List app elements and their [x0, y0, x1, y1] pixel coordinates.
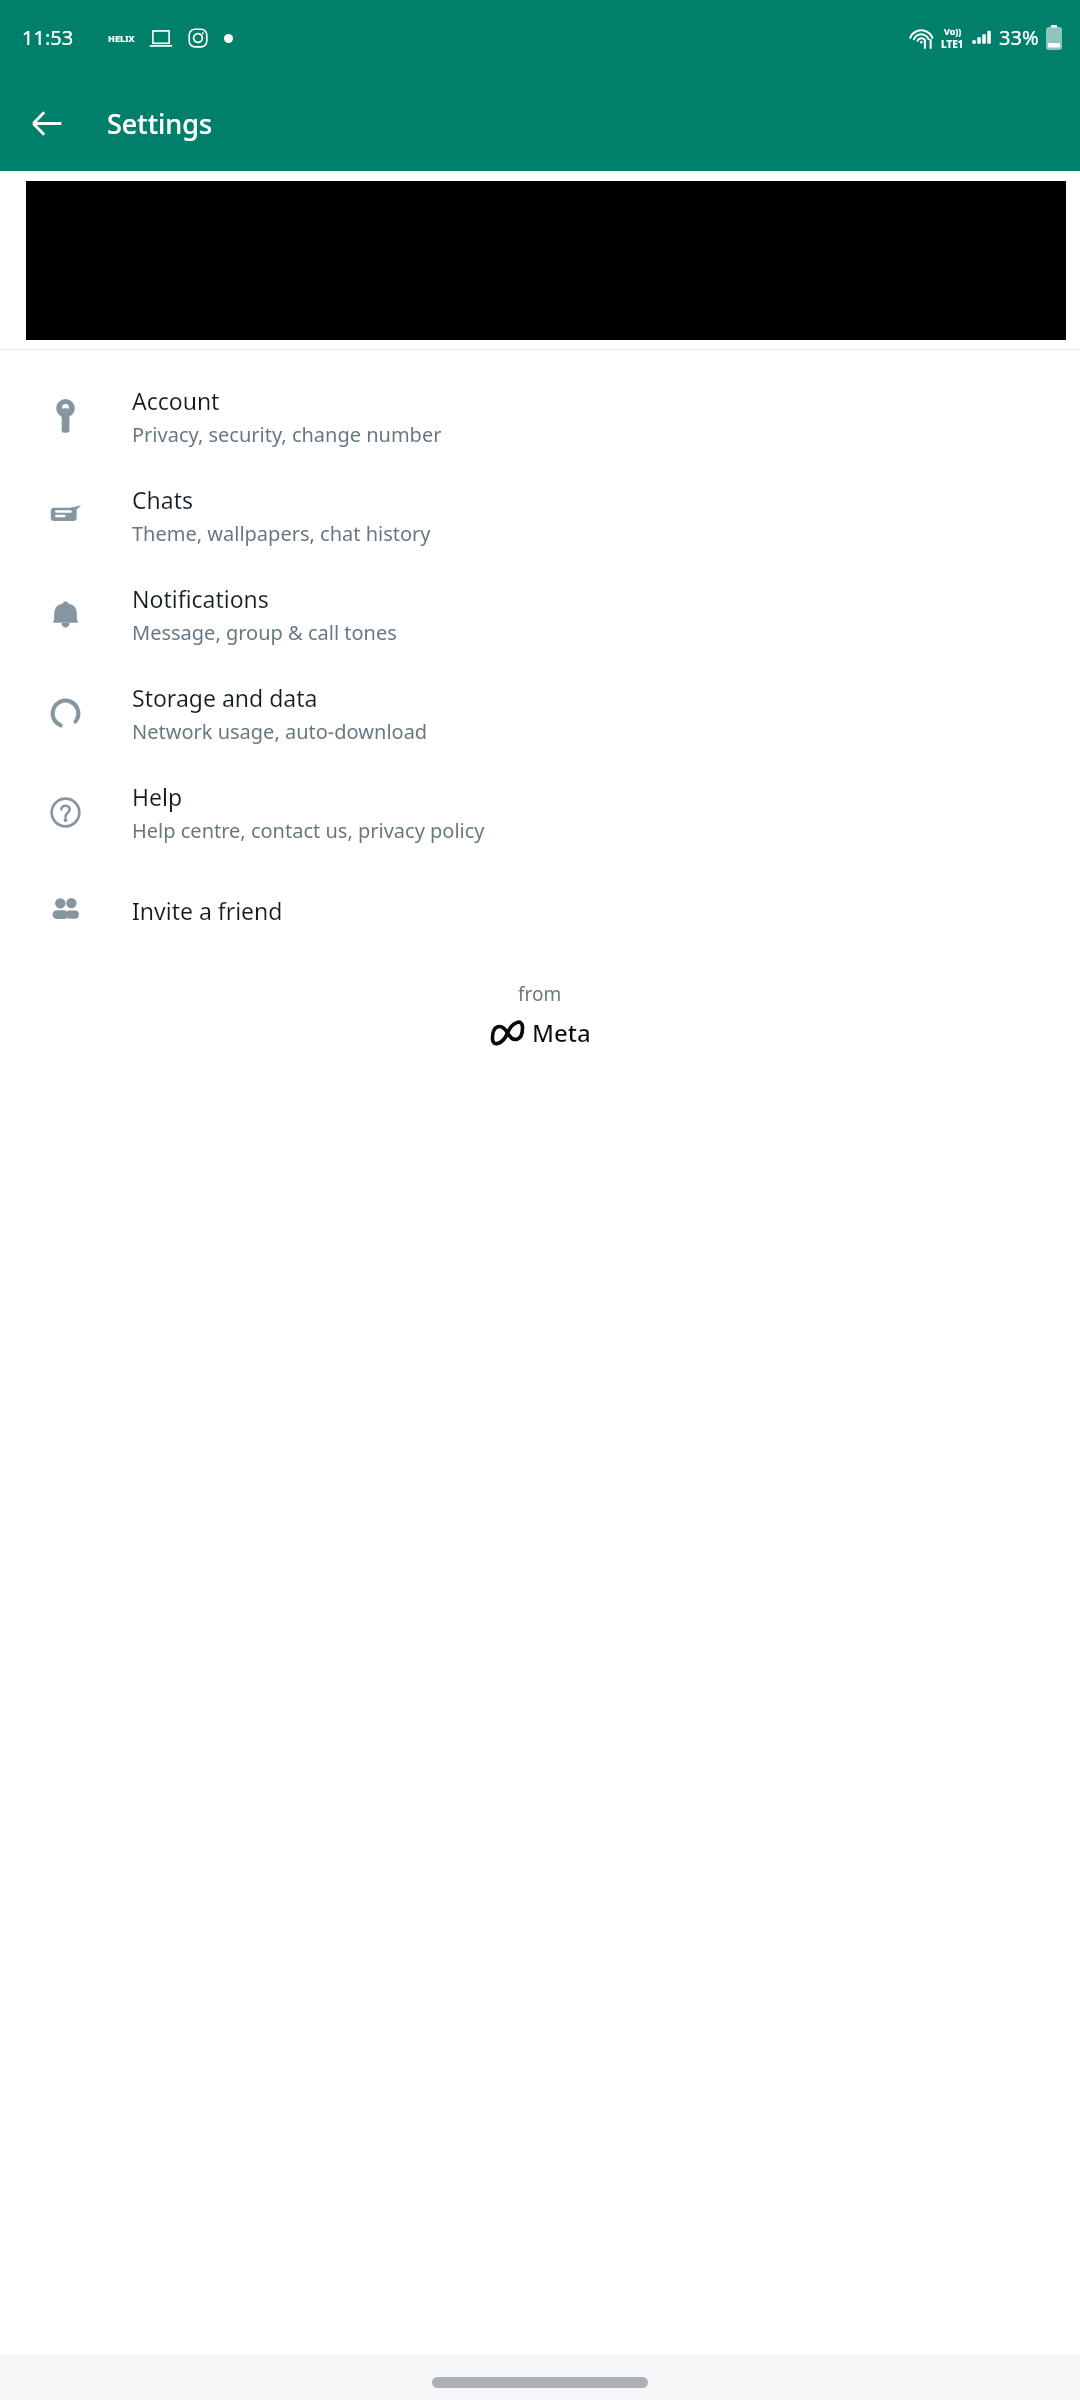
staticText: Storage and data [132, 682, 318, 713]
staticText: HELIX [108, 32, 135, 44]
button[interactable]: Chats [0, 466, 1080, 565]
button[interactable]: Invite a friend [0, 862, 1080, 959]
button[interactable]: Account [0, 367, 1080, 466]
staticText: Account [132, 385, 220, 416]
staticText: Settings [107, 105, 213, 142]
staticText: Chats [132, 484, 193, 515]
staticText: Help centre, contact us, privacy policy [132, 817, 485, 844]
button[interactable]: Back [16, 93, 76, 153]
staticText: Privacy, security, change number [132, 421, 442, 448]
staticText: Help [132, 781, 183, 812]
staticText: Meta [532, 1016, 591, 1049]
button[interactable] [0, 171, 1080, 349]
staticText: from [518, 981, 562, 1007]
staticText: Theme, wallpapers, chat history [132, 520, 431, 547]
staticText: Vo)) [944, 25, 962, 37]
staticText: 11:53 [22, 24, 74, 51]
button[interactable]: Help [0, 763, 1080, 862]
staticText: LTE1 [941, 37, 964, 51]
staticText: Network usage, auto-download [132, 718, 428, 745]
button[interactable]: Storage and data [0, 664, 1080, 763]
button[interactable]: Notifications [0, 565, 1080, 664]
staticText: 33% [999, 24, 1039, 51]
staticText: Invite a friend [132, 895, 283, 926]
staticText: Message, group & call tones [132, 619, 397, 646]
staticText: Notifications [132, 583, 269, 614]
